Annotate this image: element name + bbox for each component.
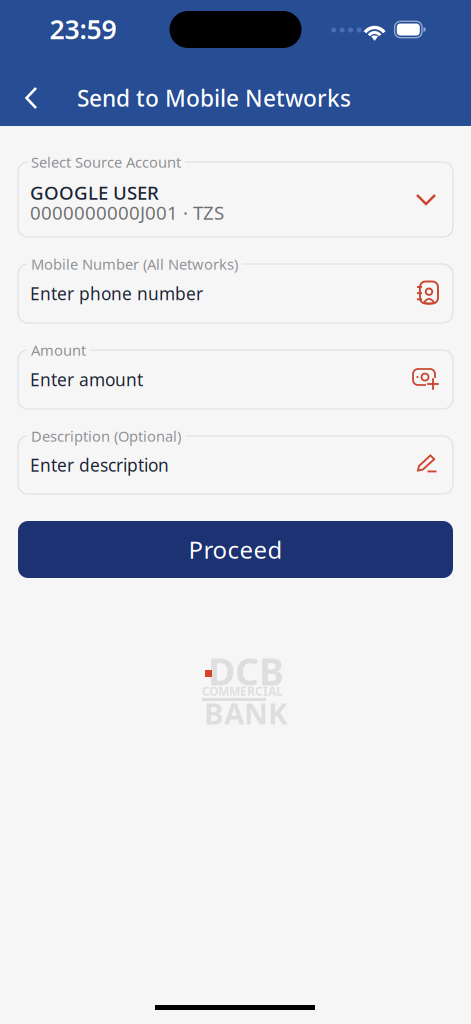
staticText: BANK [204,693,287,732]
button[interactable]: Proceed [18,521,453,578]
staticText: Enter description [30,453,169,476]
button[interactable]: Back [0,63,53,133]
staticText: COMMERCIAL [202,683,283,699]
staticText: Enter amount [30,368,143,391]
button[interactable]: Enter phone number [18,255,453,323]
button[interactable]: GOOGLE USER [18,153,453,237]
staticText: Select Source Account [31,152,181,172]
button[interactable]: Enter description [18,427,453,494]
staticText: Enter phone number [30,282,203,305]
staticText: Proceed [188,534,282,565]
staticText: Mobile Number (All Networks) [31,254,238,274]
staticText: DCB [208,646,284,696]
staticText: Send to Mobile Networks [77,83,351,113]
staticText: 0000000000J001 · TZS [30,200,224,225]
staticText: GOOGLE USER [30,180,159,205]
staticText: Amount [31,340,86,360]
button[interactable]: Enter amount [18,341,453,409]
staticText: Description (Optional) [31,426,181,446]
staticText: 23:59 [49,11,116,47]
